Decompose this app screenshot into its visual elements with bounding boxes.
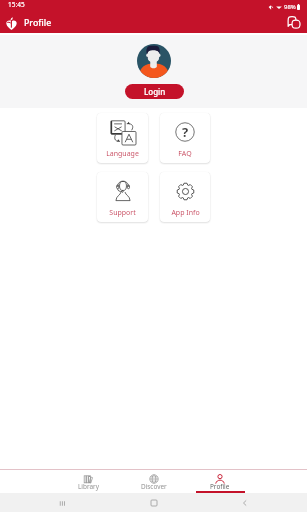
button[interactable]: Language [97, 113, 148, 163]
button[interactable]: Home [147, 496, 161, 510]
staticText: Support [109, 208, 136, 218]
staticText: Library [78, 482, 99, 491]
staticText: Language [106, 149, 139, 159]
button[interactable]: Login [125, 84, 184, 99]
staticText: App Info [171, 208, 200, 218]
button[interactable]: Library [55, 470, 121, 493]
staticText: Login [144, 86, 166, 97]
button[interactable]: Profile photo [137, 44, 171, 78]
staticText: 15:45 [8, 0, 25, 9]
staticText: Profile [24, 17, 52, 29]
staticText: Profile [210, 482, 230, 491]
button[interactable]: Messages [284, 13, 304, 33]
button[interactable]: App Info [160, 172, 210, 222]
button[interactable]: Support [97, 172, 148, 222]
staticText: FAQ [178, 149, 192, 159]
button[interactable]: Recents [55, 496, 69, 510]
staticText: 98% [284, 3, 296, 11]
staticText: Discover [141, 482, 167, 491]
button[interactable]: Profile [187, 470, 253, 493]
button[interactable]: ? [160, 113, 210, 163]
button[interactable]: Back [238, 496, 252, 510]
button[interactable]: Discover [121, 470, 187, 493]
staticText: ? [182, 123, 189, 141]
